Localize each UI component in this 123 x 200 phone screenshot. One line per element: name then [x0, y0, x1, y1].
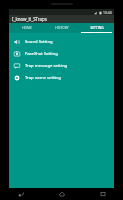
staticText: Sound Setting	[25, 39, 53, 45]
staticText: HOME	[22, 26, 32, 30]
button[interactable]: SETTING	[79, 23, 114, 33]
staticText: I_know_it_STraps	[12, 16, 47, 22]
button[interactable]: Trap name setting	[9, 72, 114, 84]
button[interactable]: FaceShot Setting	[9, 48, 114, 60]
button[interactable]: Trap message setting	[9, 60, 114, 72]
button[interactable]: Sound Setting	[9, 36, 114, 48]
staticText: Trap message setting	[25, 63, 68, 69]
staticText: Trap name setting	[25, 75, 61, 81]
button[interactable]: I_know_it_STraps	[9, 15, 114, 23]
button[interactable]: Recents	[82, 188, 123, 200]
staticText: HISTORY	[55, 26, 69, 30]
button[interactable]: HISTORY	[44, 23, 79, 33]
staticText: 10:44	[103, 10, 112, 15]
button[interactable]: Back	[0, 188, 41, 200]
staticText: FaceShot Setting	[25, 51, 58, 57]
staticText: SETTING	[90, 26, 104, 30]
button[interactable]: Home	[41, 188, 82, 200]
button[interactable]: HOME	[9, 23, 44, 33]
